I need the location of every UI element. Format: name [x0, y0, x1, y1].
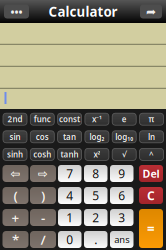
button[interactable]: e: [112, 113, 136, 125]
button[interactable]: *: [2, 231, 28, 248]
button[interactable]: √: [112, 148, 136, 160]
button[interactable]: cosh: [30, 148, 54, 160]
button[interactable]: =: [139, 209, 163, 248]
staticText: ln: [148, 131, 155, 142]
button[interactable]: ^: [139, 148, 163, 160]
staticText: ⇨: [38, 167, 48, 180]
staticText: 9: [118, 165, 125, 181]
staticText: ^: [149, 149, 154, 160]
button[interactable]: Del: [139, 165, 163, 182]
button[interactable]: 2: [84, 209, 107, 226]
staticText: Del: [142, 166, 159, 181]
button[interactable]: +: [2, 209, 28, 226]
staticText: sin: [9, 131, 20, 142]
staticText: (: [13, 187, 17, 204]
button[interactable]: 6: [110, 187, 133, 204]
staticText: 4: [66, 187, 73, 203]
staticText: e: [122, 114, 127, 124]
staticText: Calculator: [48, 3, 117, 20]
button[interactable]: ⇦: [2, 165, 28, 182]
button[interactable]: (: [2, 187, 28, 204]
button[interactable]: cos: [30, 131, 54, 143]
button[interactable]: ⇨: [30, 165, 56, 182]
staticText: ans: [114, 233, 129, 246]
button[interactable]: 5: [84, 187, 107, 204]
button[interactable]: /: [30, 231, 56, 248]
button[interactable]: 3: [110, 209, 133, 226]
button[interactable]: -: [30, 209, 56, 226]
button[interactable]: C: [139, 187, 163, 204]
staticText: x⁻¹: [92, 114, 102, 124]
staticText: .: [94, 231, 97, 247]
staticText: +: [11, 209, 19, 226]
staticText: x²: [93, 149, 100, 160]
button[interactable]: .: [84, 231, 107, 248]
button[interactable]: 8: [84, 165, 107, 182]
staticText: *: [12, 231, 19, 248]
button[interactable]: 4: [58, 187, 81, 204]
staticText: 3: [118, 209, 125, 225]
staticText: tan: [63, 131, 76, 142]
button[interactable]: sinh: [3, 148, 27, 160]
staticText: 5: [92, 187, 99, 203]
button[interactable]: x²: [85, 148, 109, 160]
staticText: tanh: [61, 149, 79, 160]
staticText: log₂: [89, 131, 104, 142]
staticText: 2: [92, 209, 99, 225]
staticText: 8: [92, 165, 99, 181]
staticText: π: [148, 114, 154, 124]
staticText: =: [147, 220, 155, 237]
staticText: cos: [36, 131, 49, 142]
button[interactable]: More options: [4, 4, 29, 18]
button[interactable]: ): [30, 187, 56, 204]
button[interactable]: ans: [110, 231, 133, 248]
staticText: func: [34, 114, 51, 124]
staticText: ): [41, 187, 45, 204]
button[interactable]: tan: [58, 131, 82, 143]
staticText: -: [41, 209, 45, 226]
staticText: ➦: [146, 5, 156, 18]
button[interactable]: ln: [139, 131, 163, 143]
button[interactable]: const: [58, 113, 82, 125]
staticText: •••: [10, 4, 22, 19]
staticText: 6: [118, 187, 125, 203]
button[interactable]: Share: [140, 4, 162, 18]
staticText: √: [122, 150, 127, 159]
button[interactable]: sin: [3, 131, 27, 143]
staticText: log₁₀: [115, 131, 133, 142]
button[interactable]: tanh: [58, 148, 82, 160]
staticText: ⇦: [10, 167, 20, 180]
button[interactable]: 2nd: [3, 113, 27, 125]
staticText: const: [59, 114, 80, 124]
button[interactable]: 7: [58, 165, 81, 182]
button[interactable]: log₂: [85, 131, 109, 143]
button[interactable]: log₁₀: [112, 131, 136, 143]
staticText: 0: [66, 231, 73, 247]
button[interactable]: π: [139, 113, 163, 125]
staticText: 2nd: [7, 114, 22, 124]
staticText: C: [147, 187, 155, 203]
staticText: 1: [66, 209, 73, 225]
staticText: cosh: [33, 149, 51, 160]
button[interactable]: 1: [58, 209, 81, 226]
button[interactable]: 0: [58, 231, 81, 248]
button[interactable]: func: [30, 113, 54, 125]
button[interactable]: 9: [110, 165, 133, 182]
staticText: 7: [66, 165, 73, 181]
staticText: sinh: [7, 149, 23, 160]
staticText: /: [40, 231, 45, 248]
button[interactable]: x⁻¹: [85, 113, 109, 125]
